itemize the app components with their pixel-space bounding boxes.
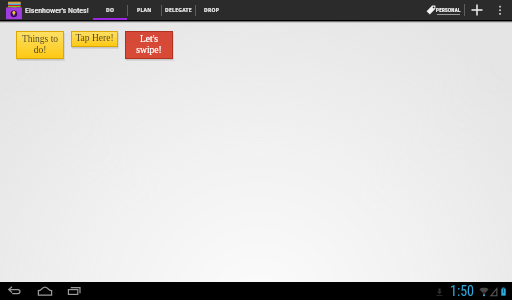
staticText: PERSONAL [436,7,461,13]
staticText: Let's swipe! [127,34,171,55]
staticText: PLAN [137,7,152,14]
button[interactable]: More options [488,0,512,20]
staticText: 1:50 [450,283,475,299]
button[interactable]: Recent apps [60,282,90,300]
staticText: Eisenhower's Notes! [25,6,89,15]
button[interactable]: PERSONAL [426,0,461,20]
button[interactable]: PLAN [127,0,161,20]
button[interactable]: Home [30,282,60,300]
button[interactable]: Let's swipe! [125,31,173,59]
button[interactable]: Back [0,282,30,300]
staticText: DO [106,7,115,14]
button[interactable]: Things to do! [16,31,64,59]
staticText: Tap Here! [75,33,114,44]
button[interactable]: DROP [195,0,229,20]
button[interactable]: DELEGATE [161,0,195,20]
staticText: DELEGATE [165,7,192,14]
button[interactable]: Add note [465,0,488,20]
button[interactable]: DO [93,0,127,20]
button[interactable]: Tap Here! [71,31,118,47]
staticText: Things to do! [18,34,62,55]
staticText: DROP [204,7,220,14]
